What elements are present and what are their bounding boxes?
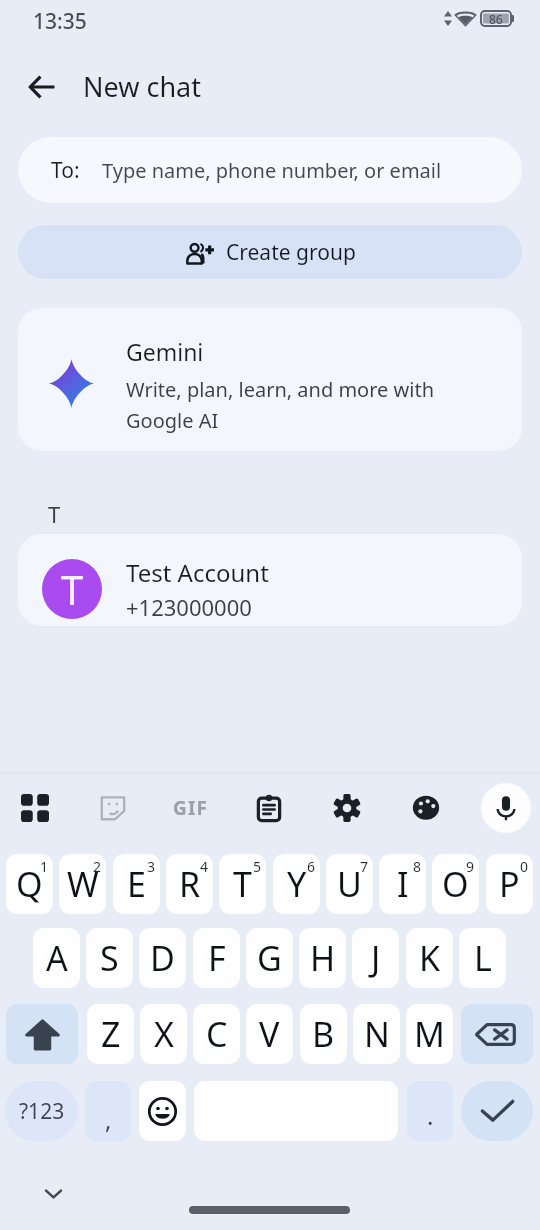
button[interactable]: F — [193, 928, 240, 988]
staticText: Write, plan, learn, and more with Google… — [126, 376, 434, 434]
button[interactable]: Gemini — [18, 308, 522, 451]
button[interactable]: R — [166, 854, 213, 914]
staticText: M — [414, 1011, 445, 1057]
staticText: 4 — [200, 857, 209, 876]
button[interactable]: Clipboard — [245, 784, 293, 832]
button[interactable]: V — [246, 1004, 293, 1064]
button[interactable]: Back — [18, 63, 66, 111]
staticText: H — [310, 935, 336, 981]
staticText: V — [259, 1011, 280, 1057]
staticText: T — [48, 499, 61, 529]
button[interactable]: X — [140, 1004, 187, 1064]
staticText: B — [312, 1011, 335, 1057]
staticText: +123000000 — [126, 592, 252, 622]
staticText: 1 — [40, 857, 49, 876]
staticText: P — [499, 861, 520, 907]
button[interactable]: Theme — [402, 784, 450, 832]
staticText: N — [364, 1011, 390, 1057]
button[interactable]: Settings — [323, 784, 371, 832]
staticText: I — [397, 861, 409, 907]
staticText: Gemini — [126, 336, 204, 367]
staticText: 86 — [489, 11, 503, 26]
staticText: 8 — [413, 857, 422, 876]
button[interactable]: . — [407, 1081, 453, 1141]
staticText: R — [179, 861, 201, 907]
staticText: GIF — [173, 795, 209, 821]
button[interactable]: Shift — [6, 1004, 78, 1064]
button[interactable]: W — [59, 854, 106, 914]
staticText: D — [150, 935, 175, 981]
button[interactable]: D — [139, 928, 186, 988]
staticText: Z — [101, 1011, 121, 1057]
staticText: To: — [51, 156, 80, 185]
staticText: 9 — [466, 857, 475, 876]
staticText: S — [100, 935, 119, 981]
button[interactable]: O — [432, 854, 479, 914]
staticText: F — [208, 935, 226, 981]
staticText: 3 — [147, 857, 156, 876]
staticText: J — [371, 935, 381, 981]
staticText: 5 — [253, 857, 262, 876]
button[interactable]: To: — [18, 137, 522, 203]
staticText: . — [427, 1099, 434, 1132]
staticText: 6 — [307, 857, 316, 876]
staticText: G — [257, 935, 282, 981]
button[interactable]: U — [326, 854, 373, 914]
staticText: O — [442, 861, 469, 907]
button[interactable]: Hide keyboard — [36, 1177, 70, 1211]
staticText: Y — [287, 861, 307, 907]
button[interactable]: E — [113, 854, 160, 914]
staticText: 2 — [93, 857, 102, 876]
staticText: Test Account — [126, 556, 269, 589]
staticText: A — [46, 935, 68, 981]
staticText: E — [127, 861, 146, 907]
staticText: 7 — [360, 857, 369, 876]
button[interactable]: I — [379, 854, 426, 914]
button[interactable]: ?123 — [5, 1081, 78, 1141]
button[interactable]: Y — [273, 854, 320, 914]
staticText: L — [474, 935, 492, 981]
button[interactable]: T — [18, 534, 522, 626]
button[interactable]: Enter — [461, 1081, 533, 1141]
button[interactable]: Z — [87, 1004, 134, 1064]
button[interactable]: B — [300, 1004, 347, 1064]
button[interactable]: S — [86, 928, 133, 988]
button[interactable]: Sticker — [89, 784, 137, 832]
staticText: C — [206, 1011, 228, 1057]
button[interactable]: J — [352, 928, 399, 988]
button[interactable]: G — [246, 928, 293, 988]
button[interactable]: Create group — [18, 225, 522, 279]
staticText: W — [67, 861, 99, 907]
button[interactable]: Emoji — [139, 1081, 186, 1141]
button[interactable]: Apps — [11, 784, 59, 832]
button[interactable]: GIF — [167, 784, 215, 832]
staticText: K — [419, 935, 441, 981]
button[interactable]: M — [406, 1004, 453, 1064]
button[interactable]: Voice input — [481, 783, 531, 833]
staticText: T — [61, 562, 84, 616]
staticText: 13:35 — [33, 7, 87, 36]
button[interactable]: , — [85, 1081, 131, 1141]
button[interactable]: Q — [6, 854, 53, 914]
button[interactable]: N — [353, 1004, 400, 1064]
button[interactable]: C — [193, 1004, 240, 1064]
staticText: 0 — [520, 857, 529, 876]
button[interactable]: H — [299, 928, 346, 988]
staticText: Type name, phone number, or email — [102, 157, 442, 184]
staticText: U — [337, 861, 362, 907]
staticText: Create group — [226, 238, 356, 267]
staticText: ?123 — [19, 1097, 65, 1126]
staticText: X — [154, 1011, 174, 1057]
staticText: T — [233, 861, 252, 907]
button[interactable]: L — [459, 928, 506, 988]
button[interactable]: K — [406, 928, 453, 988]
staticText: Q — [16, 861, 43, 907]
staticText: , — [105, 1103, 112, 1136]
staticText: New chat — [83, 68, 201, 105]
button[interactable]: P — [486, 854, 533, 914]
button[interactable]: A — [33, 928, 80, 988]
button[interactable]: T — [219, 854, 266, 914]
button[interactable]: Backspace — [461, 1004, 533, 1064]
